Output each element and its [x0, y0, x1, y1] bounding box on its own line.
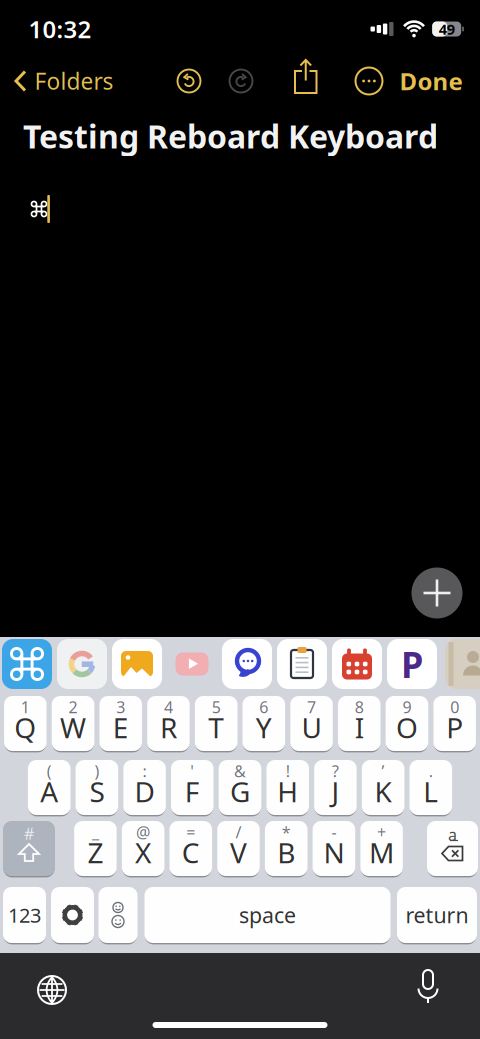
- button[interactable]: 7: [290, 696, 333, 751]
- staticText: +: [377, 821, 386, 843]
- button[interactable]: 8: [338, 696, 380, 751]
- staticText: G: [230, 773, 250, 810]
- staticText: I: [355, 709, 364, 746]
- staticText: Folders: [34, 66, 113, 96]
- staticText: X: [135, 834, 151, 871]
- staticText: ': [190, 760, 194, 782]
- staticText: 8: [355, 696, 364, 718]
- button[interactable]: [57, 639, 107, 689]
- button[interactable]: [355, 67, 382, 94]
- staticText: a: [448, 824, 457, 845]
- staticText: S: [89, 773, 104, 810]
- button[interactable]: +: [360, 821, 403, 876]
- staticText: Z: [87, 834, 103, 871]
- staticText: 9: [402, 696, 411, 718]
- button[interactable]: :: [123, 760, 166, 815]
- staticText: ’: [382, 760, 385, 782]
- button[interactable]: Done: [399, 65, 462, 97]
- button[interactable]: (: [28, 760, 70, 815]
- staticText: 3: [116, 696, 125, 718]
- staticText: Q: [14, 709, 36, 746]
- button[interactable]: a: [427, 821, 478, 876]
- staticText: ?: [332, 760, 339, 782]
- button[interactable]: [416, 970, 440, 1006]
- staticText: 49: [439, 19, 455, 39]
- button[interactable]: 123: [3, 887, 46, 943]
- staticText: Testing Reboard Keyboard: [23, 115, 438, 157]
- button[interactable]: *: [265, 821, 307, 876]
- staticText: &: [234, 760, 246, 782]
- staticText: P: [401, 640, 423, 688]
- staticText: 4: [164, 696, 173, 718]
- button[interactable]: 6: [242, 696, 285, 751]
- staticText: O: [396, 709, 418, 746]
- button[interactable]: ’: [362, 760, 404, 815]
- button[interactable]: space: [144, 887, 390, 943]
- staticText: T: [208, 709, 224, 746]
- button[interactable]: [332, 639, 382, 689]
- button[interactable]: 3: [99, 696, 142, 751]
- button[interactable]: #: [3, 821, 55, 876]
- button[interactable]: P: [387, 639, 437, 689]
- button[interactable]: ?: [314, 760, 357, 815]
- button[interactable]: [112, 639, 162, 689]
- button[interactable]: 2: [52, 696, 94, 751]
- staticText: ): [94, 760, 99, 782]
- button[interactable]: [411, 567, 462, 618]
- staticText: Y: [256, 709, 272, 746]
- staticText: K: [375, 773, 392, 810]
- button[interactable]: [277, 639, 327, 689]
- button[interactable]: [98, 887, 137, 943]
- button[interactable]: return: [397, 887, 477, 943]
- staticText: !: [286, 760, 290, 782]
- button[interactable]: 9: [386, 696, 428, 751]
- staticText: B: [277, 834, 295, 871]
- staticText: (: [47, 760, 52, 782]
- button[interactable]: /: [217, 821, 260, 876]
- button[interactable]: 1: [4, 696, 47, 751]
- staticText: Done: [399, 65, 462, 97]
- staticText: -: [331, 821, 336, 843]
- button[interactable]: [167, 639, 217, 689]
- button[interactable]: 0: [433, 696, 476, 751]
- button[interactable]: Folders: [14, 66, 113, 96]
- button[interactable]: [445, 639, 480, 689]
- staticText: M: [369, 834, 394, 871]
- staticText: 7: [307, 696, 316, 718]
- staticText: L: [423, 773, 438, 810]
- staticText: /: [235, 821, 241, 843]
- button[interactable]: ': [171, 760, 214, 815]
- staticText: =: [186, 821, 195, 843]
- button[interactable]: ): [76, 760, 118, 815]
- button[interactable]: 5: [195, 696, 237, 751]
- button[interactable]: &: [219, 760, 261, 815]
- button[interactable]: [222, 639, 272, 689]
- button[interactable]: _: [74, 821, 117, 876]
- staticText: space: [239, 901, 296, 929]
- staticText: 1: [21, 696, 30, 718]
- button[interactable]: @: [122, 821, 164, 876]
- button[interactable]: [38, 976, 66, 1004]
- staticText: @: [136, 821, 150, 843]
- button[interactable]: 4: [147, 696, 190, 751]
- staticText: V: [230, 834, 247, 871]
- button[interactable]: .: [409, 760, 452, 815]
- staticText: C: [182, 834, 200, 871]
- staticText: H: [277, 773, 298, 810]
- staticText: .: [429, 760, 433, 782]
- button[interactable]: [294, 58, 318, 94]
- button[interactable]: [51, 887, 94, 943]
- staticText: 10:32: [28, 13, 91, 45]
- staticText: 123: [8, 902, 41, 928]
- button[interactable]: [177, 69, 200, 92]
- button[interactable]: [2, 639, 52, 689]
- button[interactable]: !: [266, 760, 309, 815]
- staticText: 0: [450, 696, 459, 718]
- staticText: P: [446, 709, 463, 746]
- staticText: 5: [212, 696, 221, 718]
- staticText: A: [40, 773, 58, 810]
- button[interactable]: [229, 69, 252, 92]
- button[interactable]: -: [313, 821, 355, 876]
- button[interactable]: =: [169, 821, 212, 876]
- staticText: *: [282, 821, 291, 843]
